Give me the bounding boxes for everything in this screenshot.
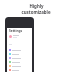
- staticText: Highly: [29, 3, 44, 9]
- staticText: Settings: [9, 29, 23, 33]
- button[interactable]: Sounds: [7, 64, 32, 68]
- button[interactable]: Storage: [7, 60, 32, 64]
- button[interactable]: Appearance: [7, 48, 32, 52]
- button[interactable]: Notifications: [7, 52, 32, 56]
- staticText: customizable: [21, 9, 51, 15]
- button[interactable]: [7, 35, 32, 38]
- button[interactable]: Security: [7, 68, 32, 72]
- button[interactable]: Privacy: [7, 56, 32, 60]
